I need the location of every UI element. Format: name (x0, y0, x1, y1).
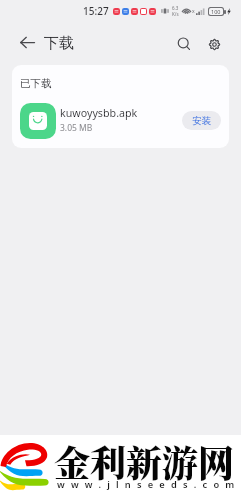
staticText: kuwoyysbb.apk (60, 106, 138, 121)
staticText: 下载 (44, 34, 74, 53)
staticText: 已下载 (20, 77, 52, 90)
staticText: www.jlnseeds.com (57, 478, 241, 491)
staticText: 100 (211, 8, 221, 15)
staticText: 3.05 MB (60, 122, 93, 134)
staticText: 15:27 (83, 4, 109, 18)
staticText: 金利新游网 (54, 436, 235, 488)
button[interactable]: Settings (201, 31, 227, 57)
staticText: 6.3 (172, 5, 179, 11)
button[interactable]: Back (14, 29, 40, 55)
button[interactable]: 安装 (182, 111, 221, 130)
staticText: x (192, 8, 195, 15)
staticText: K/s (172, 11, 179, 17)
staticText: 安装 (192, 115, 211, 127)
button[interactable]: Search (171, 31, 197, 57)
button[interactable]: kuwoyysbb.apk (12, 97, 229, 142)
